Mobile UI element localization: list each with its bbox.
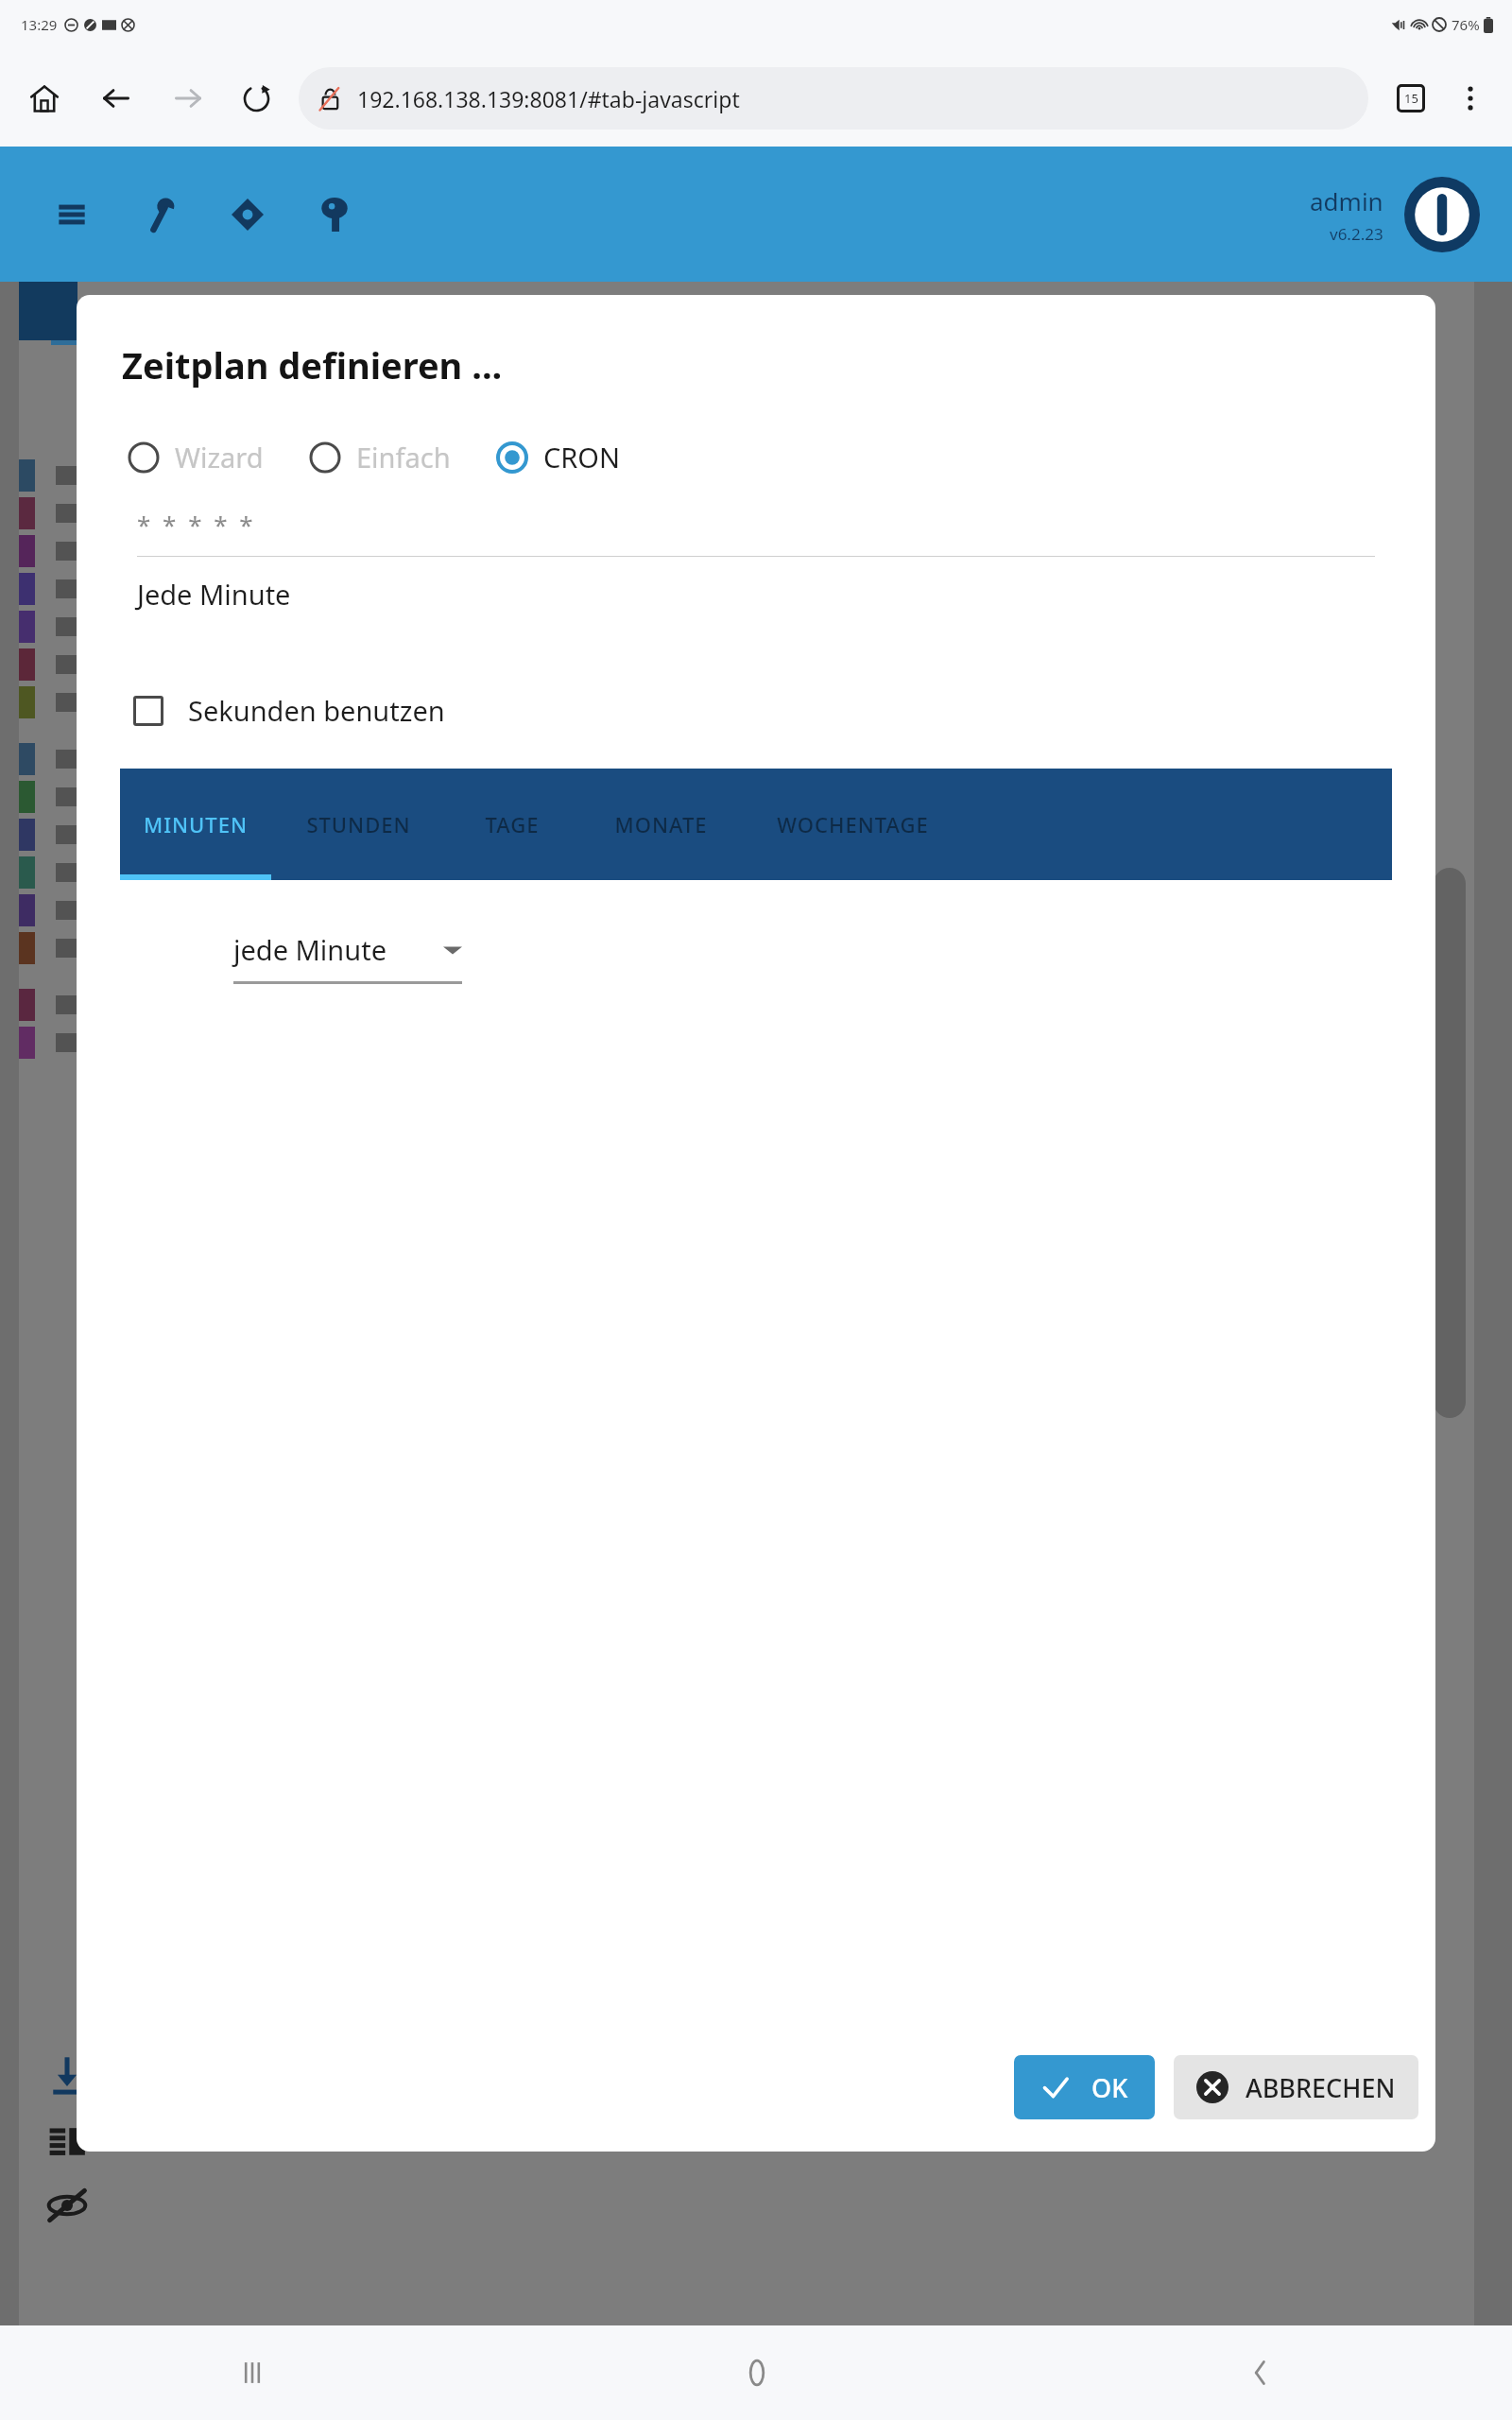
button[interactable]: Menu: [42, 184, 102, 245]
button[interactable]: Reload: [227, 69, 285, 128]
button[interactable]: jede Minute: [233, 931, 462, 968]
button[interactable]: Back: [87, 69, 146, 128]
staticText: ABBRECHEN: [1246, 2070, 1396, 2105]
staticText: 76%: [1452, 15, 1480, 34]
button[interactable]: OK: [1014, 2055, 1155, 2119]
staticText: Wizard: [175, 439, 264, 475]
button[interactable]: Adapter: [217, 184, 278, 245]
button[interactable]: CRON: [487, 431, 630, 483]
staticText: TAGE: [485, 810, 540, 838]
button[interactable]: TAGE: [446, 769, 578, 880]
button[interactable]: STUNDEN: [271, 769, 446, 880]
staticText: 15: [1404, 90, 1418, 107]
button[interactable]: Forward: [159, 69, 217, 128]
staticText: v6.2.23: [1330, 223, 1383, 245]
staticText: Zeitplan definieren ...: [122, 340, 503, 389]
button[interactable]: Tabs: [1383, 71, 1438, 126]
staticText: OK: [1091, 2070, 1128, 2105]
button[interactable]: MONATE: [578, 769, 744, 880]
staticText: admin: [1310, 184, 1383, 217]
staticText: WOCHENTAGE: [777, 810, 929, 838]
button[interactable]: Settings: [130, 184, 191, 245]
staticText: STUNDEN: [306, 810, 411, 838]
staticText: Einfach: [356, 439, 451, 475]
staticText: 192.168.138.139:8081/#tab-javascript: [357, 84, 740, 113]
button[interactable]: Back: [1008, 2325, 1512, 2420]
button[interactable]: Wizard: [118, 431, 273, 483]
button[interactable]: Einfach: [300, 431, 460, 483]
button[interactable]: WOCHENTAGE: [744, 769, 961, 880]
staticText: Sekunden benutzen: [188, 692, 445, 729]
staticText: MINUTEN: [144, 810, 248, 838]
button[interactable]: Sekunden benutzen: [118, 684, 460, 736]
button[interactable]: Home: [15, 69, 74, 128]
button[interactable]: Recent apps: [0, 2325, 505, 2420]
staticText: 13:29: [21, 15, 58, 34]
button[interactable]: Home: [505, 2325, 1008, 2420]
button[interactable]: MINUTEN: [120, 769, 271, 880]
staticText: MONATE: [614, 810, 708, 838]
staticText: Jede Minute: [137, 576, 291, 613]
staticText: CRON: [543, 439, 621, 475]
button[interactable]: 192.168.138.139:8081/#tab-javascript: [299, 67, 1368, 130]
button[interactable]: ABBRECHEN: [1174, 2055, 1418, 2119]
button[interactable]: More options: [1444, 72, 1497, 125]
staticText: * * * * *: [137, 508, 256, 541]
button[interactable]: Account: [1404, 177, 1480, 252]
staticText: ×: [330, 292, 347, 331]
staticText: jede Minute: [233, 931, 387, 968]
button[interactable]: Objects: [304, 184, 365, 245]
